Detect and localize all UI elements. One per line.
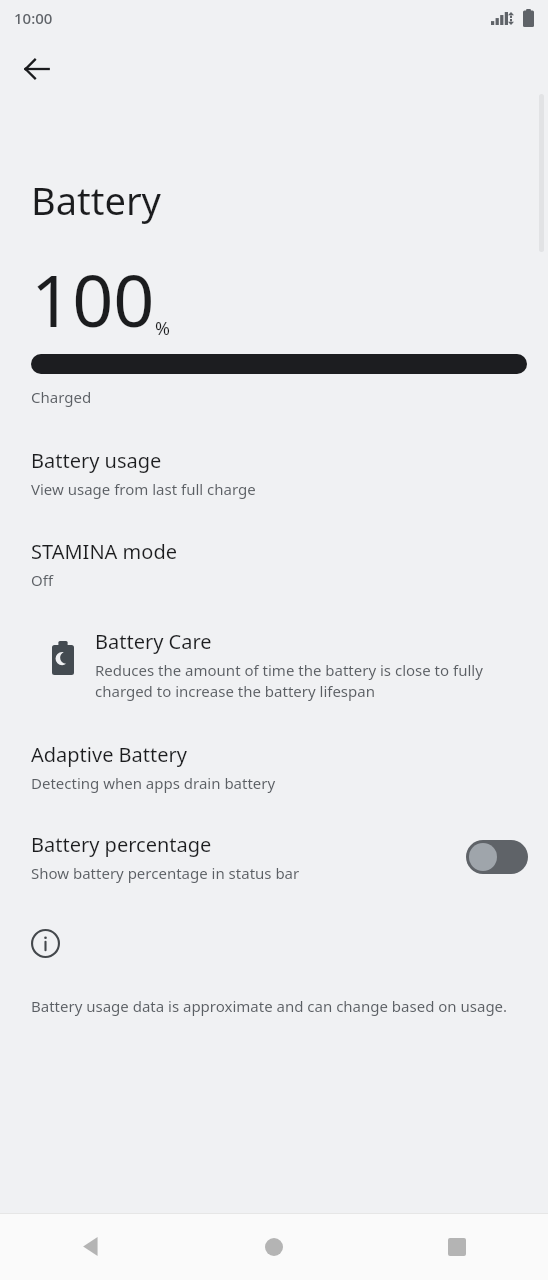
staticText: Battery percentage [31, 831, 212, 858]
button[interactable]: Back [9, 41, 65, 97]
staticText: Off [31, 570, 54, 590]
staticText: Detecting when apps drain battery [31, 773, 276, 793]
button[interactable]: Home [182, 1213, 365, 1280]
staticText: Show battery percentage in status bar [31, 863, 300, 883]
button[interactable]: Battery Care [0, 630, 548, 704]
button[interactable]: Battery usage [0, 447, 548, 499]
staticText: 10:00 [14, 8, 53, 28]
staticText: Battery [31, 174, 161, 226]
staticText: Battery Care [95, 628, 212, 655]
staticText: Adaptive Battery [31, 741, 188, 768]
button[interactable]: STAMINA mode [0, 538, 548, 590]
staticText: 100 [31, 250, 155, 348]
staticText: Reduces the amount of time the battery i… [95, 660, 524, 702]
staticText: STAMINA mode [31, 538, 177, 565]
button[interactable]: Battery percentage toggle [466, 840, 528, 874]
button[interactable]: Back [0, 1213, 182, 1280]
button[interactable]: Battery percentage [0, 831, 548, 883]
staticText: Battery usage data is approximate and ca… [31, 996, 508, 1016]
staticText: Battery usage [31, 447, 162, 474]
staticText: View usage from last full charge [31, 479, 256, 499]
staticText: % [155, 316, 170, 341]
button[interactable]: Adaptive Battery [0, 741, 548, 793]
button[interactable]: Recent apps [365, 1213, 548, 1280]
staticText: Charged [31, 387, 92, 407]
